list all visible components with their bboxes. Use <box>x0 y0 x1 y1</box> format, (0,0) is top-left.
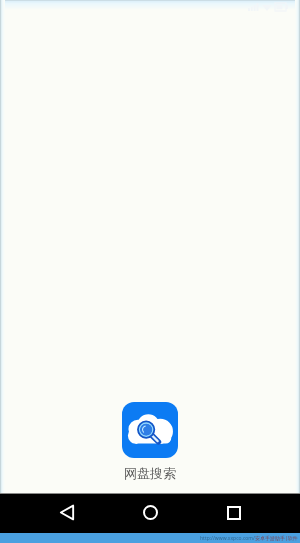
staticText: 安卓手游助手|软件 <box>255 535 298 542</box>
button[interactable]: Back <box>47 493 87 532</box>
button[interactable]: Recents <box>214 493 254 532</box>
button[interactable]: 网盘搜索 <box>122 402 178 458</box>
staticText: 网盘搜索 <box>124 465 176 481</box>
staticText: http://www.xxpco.com/ <box>200 535 255 542</box>
button[interactable]: Home <box>130 493 170 532</box>
